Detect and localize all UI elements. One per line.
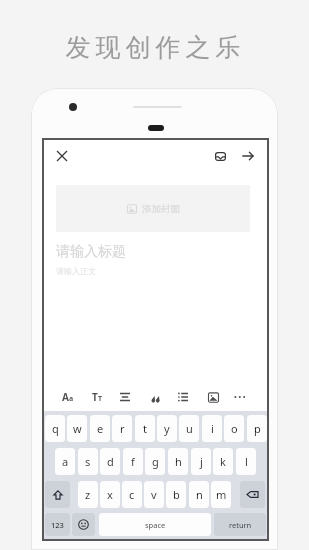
staticText: z bbox=[85, 487, 91, 502]
staticText: e bbox=[97, 421, 104, 436]
button[interactable]: Text style bbox=[58, 387, 78, 407]
staticText: return bbox=[229, 520, 252, 530]
button[interactable]: Close bbox=[49, 143, 75, 169]
staticText: A bbox=[62, 390, 69, 404]
button[interactable]: y bbox=[157, 415, 177, 442]
button[interactable]: Backspace bbox=[240, 481, 265, 508]
staticText: p bbox=[254, 421, 261, 436]
button[interactable]: Emoji bbox=[72, 513, 95, 536]
button[interactable]: k bbox=[213, 448, 233, 475]
button[interactable]: x bbox=[100, 481, 120, 508]
button[interactable]: Insert image bbox=[203, 387, 223, 407]
staticText: t bbox=[143, 421, 147, 436]
staticText: 请输入正文 bbox=[56, 266, 96, 276]
staticText: d bbox=[107, 454, 114, 469]
staticText: s bbox=[85, 454, 91, 469]
button[interactable]: w bbox=[67, 415, 87, 442]
staticText: 请输入标题 bbox=[56, 243, 126, 261]
staticText: c bbox=[129, 487, 135, 502]
button[interactable]: o bbox=[224, 415, 244, 442]
staticText: a bbox=[69, 394, 74, 404]
staticText: b bbox=[173, 487, 180, 502]
button[interactable]: h bbox=[168, 448, 188, 475]
staticText: w bbox=[73, 421, 82, 436]
button[interactable]: i bbox=[202, 415, 222, 442]
staticText: T bbox=[98, 394, 103, 404]
staticText: v bbox=[151, 487, 157, 502]
button[interactable]: g bbox=[145, 448, 165, 475]
button[interactable]: s bbox=[78, 448, 98, 475]
staticText: l bbox=[245, 454, 248, 469]
button[interactable]: q bbox=[45, 415, 65, 442]
button[interactable]: d bbox=[100, 448, 120, 475]
staticText: j bbox=[200, 454, 203, 469]
button[interactable]: m bbox=[211, 481, 231, 508]
button[interactable]: c bbox=[122, 481, 142, 508]
staticText: k bbox=[220, 454, 226, 469]
staticText: 发现创作之乐 bbox=[63, 32, 243, 63]
staticText: u bbox=[186, 421, 193, 436]
button[interactable]: Quote bbox=[145, 387, 165, 407]
button[interactable]: t bbox=[135, 415, 155, 442]
staticText: T bbox=[92, 390, 98, 404]
staticText: i bbox=[211, 421, 214, 436]
button[interactable]: e bbox=[90, 415, 110, 442]
button[interactable]: Numbers bbox=[45, 513, 70, 536]
button[interactable]: f bbox=[123, 448, 143, 475]
button[interactable]: Font size bbox=[87, 387, 107, 407]
button[interactable]: u bbox=[179, 415, 199, 442]
staticText: y bbox=[164, 421, 170, 436]
button[interactable]: Shift bbox=[45, 481, 70, 508]
staticText: space bbox=[145, 520, 166, 530]
staticText: 添加封面 bbox=[142, 203, 180, 215]
button[interactable]: j bbox=[191, 448, 211, 475]
button[interactable]: b bbox=[166, 481, 186, 508]
button[interactable]: r bbox=[112, 415, 132, 442]
button[interactable]: Next bbox=[235, 143, 261, 169]
staticText: 123 bbox=[51, 520, 64, 530]
button[interactable]: z bbox=[78, 481, 98, 508]
staticText: n bbox=[196, 487, 203, 502]
button[interactable]: 添加封面 bbox=[56, 185, 250, 232]
staticText: h bbox=[175, 454, 182, 469]
button[interactable]: v bbox=[144, 481, 164, 508]
button[interactable]: a bbox=[55, 448, 75, 475]
button[interactable]: Return bbox=[214, 513, 266, 536]
staticText: m bbox=[216, 487, 227, 502]
button[interactable]: Drafts bbox=[207, 143, 233, 169]
staticText: q bbox=[52, 421, 59, 436]
button[interactable]: n bbox=[189, 481, 209, 508]
button[interactable]: List bbox=[173, 387, 193, 407]
button[interactable]: space bbox=[99, 513, 211, 536]
staticText: r bbox=[120, 421, 125, 436]
staticText: g bbox=[152, 454, 159, 469]
staticText: x bbox=[107, 487, 113, 502]
button[interactable]: p bbox=[247, 415, 267, 442]
staticText: a bbox=[62, 454, 69, 469]
button[interactable]: Align bbox=[115, 387, 135, 407]
staticText: o bbox=[231, 421, 238, 436]
button[interactable]: More bbox=[230, 387, 250, 407]
button[interactable]: l bbox=[236, 448, 256, 475]
staticText: f bbox=[131, 454, 135, 469]
